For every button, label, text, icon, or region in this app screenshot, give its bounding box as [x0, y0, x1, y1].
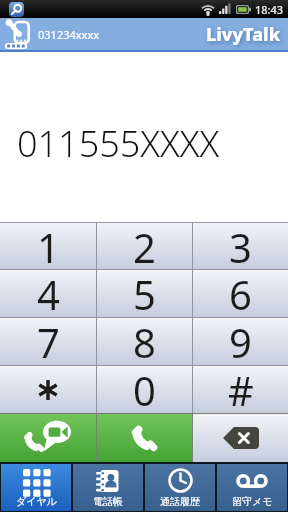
button[interactable]: 通話履歴 — [145, 464, 215, 511]
button[interactable]: # — [193, 366, 288, 413]
staticText: 4 — [37, 267, 60, 314]
staticText: 18:43 — [255, 2, 284, 17]
staticText: 1 — [37, 220, 60, 266]
button[interactable]: 4 — [0, 270, 96, 317]
button[interactable] — [97, 414, 192, 462]
staticText: 031234xxxx — [38, 27, 100, 42]
button[interactable] — [193, 414, 288, 462]
staticText: 3 — [229, 220, 252, 266]
staticText: 0 — [133, 363, 156, 410]
button[interactable]: 1 — [0, 223, 96, 269]
staticText: 留守メモ — [232, 495, 273, 508]
staticText: 2 — [133, 220, 156, 266]
staticText: 6 — [229, 267, 252, 314]
button[interactable]: 0 — [97, 366, 192, 413]
button[interactable]: ダイヤル — [1, 464, 71, 511]
button[interactable] — [0, 366, 96, 413]
staticText: 8 — [133, 315, 156, 362]
button[interactable]: 7 — [0, 318, 96, 365]
staticText: 9 — [229, 315, 252, 362]
button[interactable]: 2 — [97, 223, 192, 269]
button[interactable]: 5 — [97, 270, 192, 317]
button[interactable] — [0, 414, 96, 462]
staticText: ダイヤル — [16, 495, 57, 508]
staticText: 通話履歴 — [160, 495, 200, 508]
staticText: 7 — [37, 315, 60, 362]
staticText: # — [228, 363, 254, 410]
button[interactable]: 留守メモ — [217, 464, 287, 511]
button[interactable]: 9 — [193, 318, 288, 365]
button[interactable]: 6 — [193, 270, 288, 317]
staticText: 011555XXXX — [17, 119, 220, 168]
staticText: 電話帳 — [93, 495, 123, 508]
staticText: LivyTalk — [206, 22, 281, 47]
button[interactable]: 3 — [193, 223, 288, 269]
button[interactable]: 電話帳 — [73, 464, 143, 511]
button[interactable]: 8 — [97, 318, 192, 365]
staticText: 5 — [133, 267, 156, 314]
